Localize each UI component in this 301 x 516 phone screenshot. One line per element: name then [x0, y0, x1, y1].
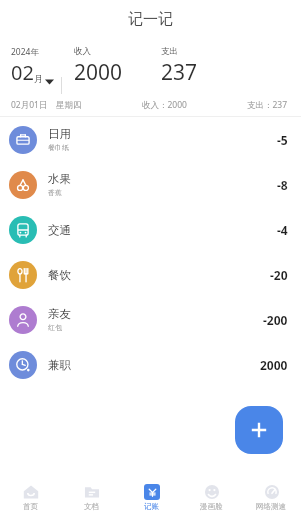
staticText: 收入：2000 — [142, 99, 187, 111]
button[interactable]: 2024年 — [11, 46, 55, 86]
staticText: 237 — [161, 58, 198, 87]
staticText: 水果 — [48, 172, 71, 186]
staticText: 2000 — [260, 357, 288, 373]
button[interactable]: 交通 — [0, 207, 301, 252]
staticText: 餐饮 — [48, 268, 71, 282]
staticText: 记账 — [144, 502, 159, 511]
button[interactable]: 文档 — [61, 478, 121, 516]
staticText: -8 — [277, 177, 288, 193]
staticText: 红包 — [48, 323, 62, 332]
staticText: 香蕉 — [48, 188, 62, 197]
staticText: 月 — [34, 73, 43, 84]
staticText: -200 — [263, 312, 288, 328]
staticText: 漫画脸 — [200, 502, 223, 511]
staticText: 餐巾纸 — [48, 143, 69, 152]
staticText: 2024年 — [11, 46, 39, 58]
staticText: 02 — [11, 59, 34, 86]
button[interactable]: 漫画脸 — [181, 478, 241, 516]
staticText: 记一记 — [128, 10, 173, 29]
staticText: 02月01日 — [11, 99, 48, 111]
button[interactable]: 餐饮 — [0, 252, 301, 297]
staticText: 日用 — [48, 127, 71, 141]
staticText: -4 — [277, 222, 288, 238]
staticText: 兼职 — [48, 358, 71, 372]
staticText: 支出：237 — [247, 99, 288, 111]
staticText: 亲友 — [48, 307, 71, 321]
button[interactable]: Add record — [235, 406, 283, 454]
staticText: 支出 — [161, 46, 178, 57]
staticText: 星期四 — [56, 100, 82, 111]
button[interactable]: 网络测速 — [241, 478, 301, 516]
staticText: 文档 — [84, 502, 99, 511]
staticText: 首页 — [23, 502, 38, 511]
button[interactable]: 亲友 — [0, 297, 301, 342]
staticText: -20 — [270, 267, 288, 283]
button[interactable]: 水果 — [0, 162, 301, 207]
staticText: 收入 — [74, 46, 91, 57]
button[interactable]: 记账 — [121, 478, 181, 516]
staticText: -5 — [277, 132, 288, 148]
button[interactable]: 兼职 — [0, 342, 301, 387]
button[interactable]: 首页 — [0, 478, 61, 516]
staticText: 2000 — [74, 58, 123, 87]
staticText: 交通 — [48, 223, 71, 237]
staticText: 网络测速 — [256, 502, 286, 511]
button[interactable]: 日用 — [0, 117, 301, 162]
